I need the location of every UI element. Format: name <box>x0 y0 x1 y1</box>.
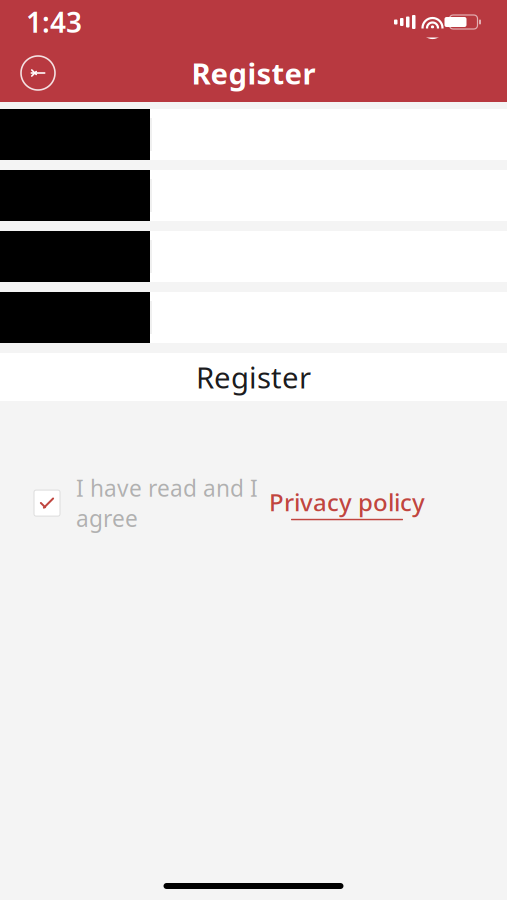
button[interactable]: Privacy policy <box>269 486 425 520</box>
staticText: Privacy policy <box>269 486 425 518</box>
staticText: Register <box>191 53 315 92</box>
button[interactable]: I agree checkbox <box>30 486 64 520</box>
button[interactable]: Register <box>0 353 507 401</box>
staticText: 1:43 <box>26 3 82 41</box>
staticText: I have read and I agree <box>76 473 258 533</box>
button[interactable]: Back <box>14 49 62 97</box>
staticText: Register <box>196 357 311 396</box>
